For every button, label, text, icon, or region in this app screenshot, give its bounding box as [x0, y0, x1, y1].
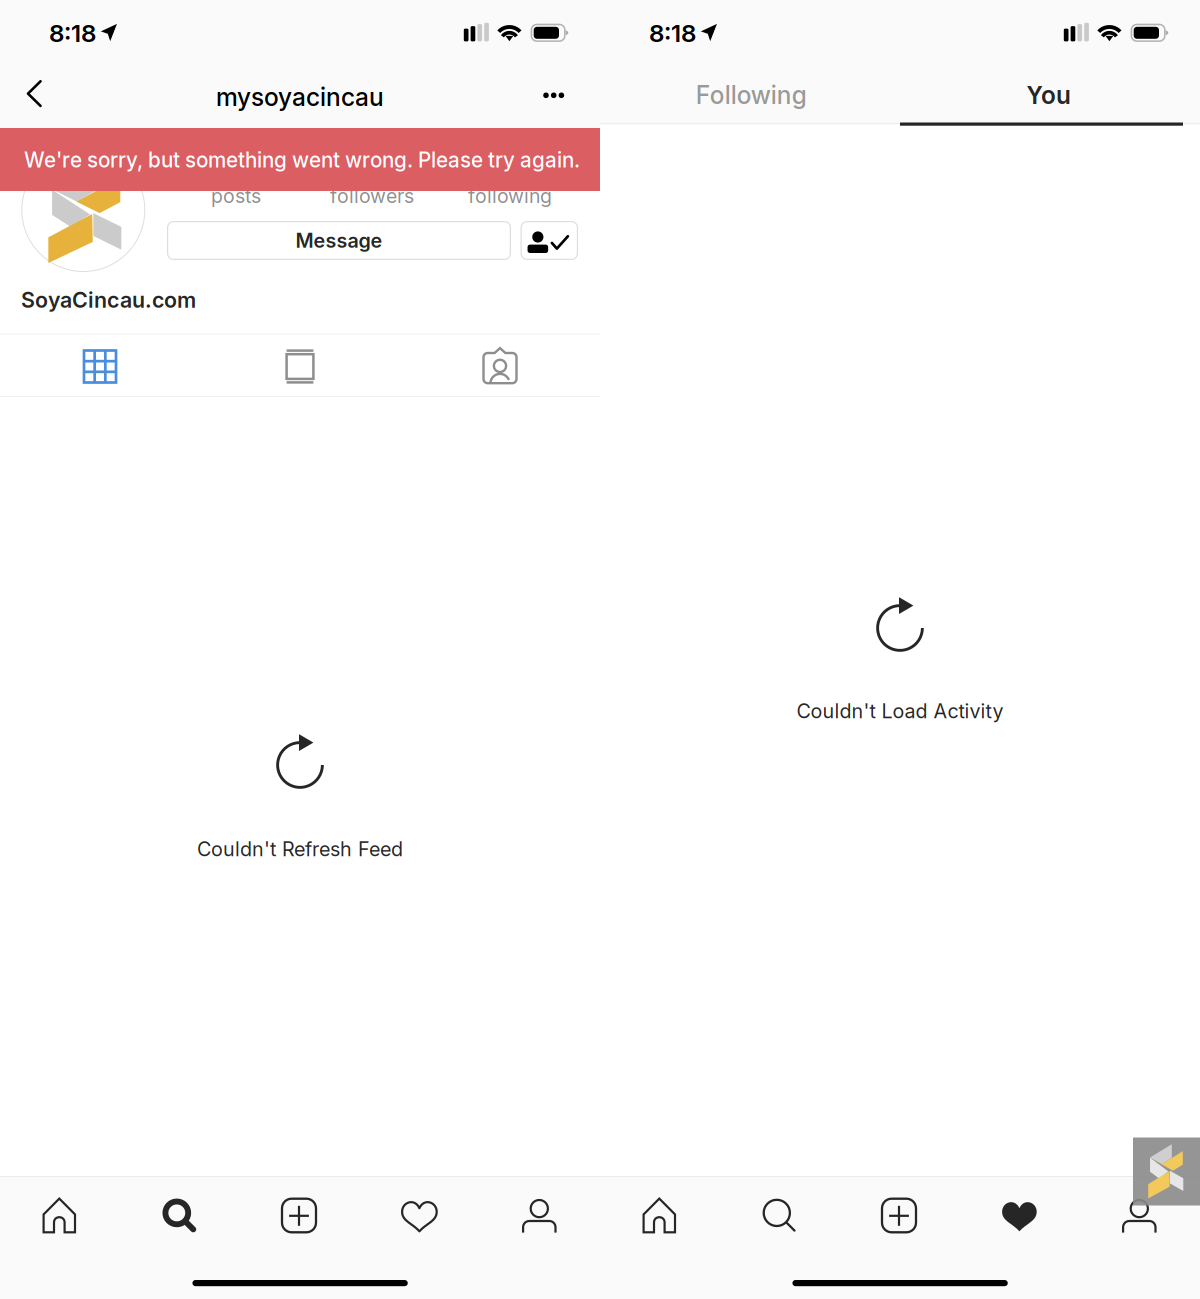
button[interactable]: New post [840, 1177, 960, 1253]
staticText: 8:18 [49, 18, 96, 48]
staticText: You [1026, 80, 1071, 110]
staticText: Couldn't Load Activity [796, 699, 1003, 723]
button[interactable]: Search [120, 1177, 240, 1253]
button[interactable]: Profile [1080, 1177, 1200, 1253]
staticText: following [468, 184, 552, 208]
staticText: 8:18 [649, 18, 696, 48]
staticText: Message [295, 229, 382, 252]
button[interactable]: Following [601, 68, 901, 122]
button[interactable]: Home [0, 1177, 119, 1253]
button[interactable]: Following [520, 221, 578, 260]
staticText: Following [696, 80, 807, 110]
staticText: SoyaCincau.com [21, 287, 196, 313]
button[interactable]: Activity [360, 1177, 480, 1253]
staticText: mysoyacincau [216, 82, 384, 112]
staticText: followers [330, 184, 414, 208]
button[interactable]: Profile [480, 1177, 600, 1253]
button[interactable]: Home [599, 1177, 719, 1253]
staticText: We're sorry, but something went wrong. P… [24, 147, 580, 172]
staticText: Couldn't Refresh Feed [197, 837, 403, 861]
button[interactable]: Back [8, 67, 60, 119]
button[interactable]: Message [167, 221, 511, 260]
button[interactable]: More options [531, 72, 577, 118]
button[interactable]: Tagged [400, 335, 600, 397]
button[interactable]: You [898, 68, 1198, 122]
button[interactable]: Search [720, 1177, 840, 1253]
button[interactable]: Grid [0, 335, 200, 397]
staticText: posts [211, 184, 261, 208]
button[interactable]: Activity [960, 1177, 1080, 1253]
button[interactable]: Feed list [200, 335, 400, 397]
button[interactable]: New post [240, 1177, 360, 1253]
